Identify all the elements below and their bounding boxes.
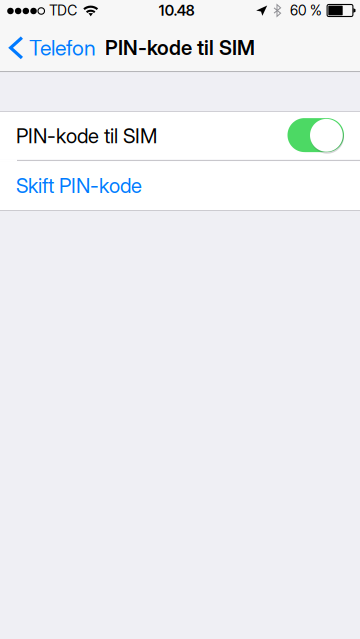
button[interactable]: Skift PIN-kode [0, 161, 360, 210]
staticText: 60 % [290, 2, 322, 19]
staticText: Skift PIN-kode [16, 173, 142, 198]
staticText: TDC [49, 2, 77, 19]
button[interactable]: Back to Telefon [0, 21, 104, 72]
staticText: PIN-kode til SIM [16, 124, 157, 148]
button[interactable]: PIN-kode til SIM [0, 112, 360, 160]
staticText: PIN-kode til SIM [105, 35, 255, 60]
staticText: 10.48 [159, 2, 195, 19]
staticText: Telefon [29, 35, 96, 61]
